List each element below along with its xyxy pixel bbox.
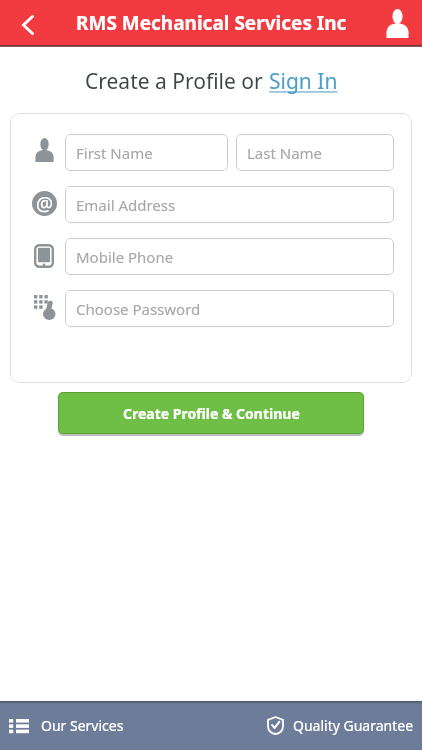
- staticText: Quality Guarantee: [293, 716, 414, 735]
- staticText: Choose Password: [76, 299, 201, 319]
- staticText: Email Address: [76, 195, 176, 215]
- staticText: Create Profile & Continue: [123, 404, 300, 423]
- staticText: First Name: [76, 143, 153, 163]
- staticText: Sign In: [269, 67, 338, 96]
- staticText: Our Services: [41, 716, 124, 735]
- staticText: @: [36, 191, 54, 216]
- staticText: Mobile Phone: [76, 247, 174, 267]
- staticText: RMS Mechanical Services Inc: [76, 10, 347, 36]
- staticText: Last Name: [247, 143, 323, 163]
- staticText: Create a Profile or: [85, 67, 269, 96]
